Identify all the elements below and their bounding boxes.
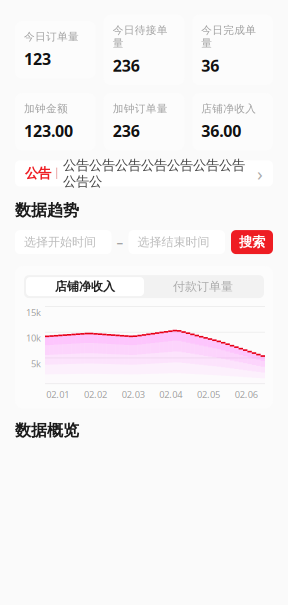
staticText: 36.00 (201, 120, 241, 141)
staticText: 123.00 (24, 120, 73, 141)
staticText: 店铺净收入 (201, 102, 256, 115)
staticText: 公告公告公告公告公告公告公告公告公 (63, 157, 245, 190)
staticText: 02.06 (235, 388, 258, 400)
button[interactable]: 加钟订单量 (104, 93, 184, 150)
staticText: 123 (24, 48, 51, 69)
staticText: 10k (26, 332, 41, 344)
staticText: 付款订单量 (173, 279, 233, 294)
staticText: 02.04 (159, 388, 182, 400)
staticText: 今日完成单量 (201, 24, 256, 50)
staticText: 加钟订单量 (113, 102, 168, 115)
staticText: 02.01 (46, 388, 69, 400)
button[interactable]: 选择结束时间 (128, 230, 225, 254)
staticText: 数据趋势 (15, 200, 79, 220)
staticText: 15k (26, 306, 41, 318)
staticText: – (116, 233, 123, 251)
button[interactable]: 今日完成单量 (192, 15, 273, 85)
staticText: 数据概览 (15, 420, 79, 440)
staticText: 丨 (51, 166, 63, 181)
staticText: 店铺净收入 (55, 279, 115, 294)
button[interactable]: 搜索 (231, 230, 273, 254)
staticText: 02.02 (84, 388, 107, 400)
staticText: 今日订单量 (24, 30, 79, 43)
staticText: 选择开始时间 (24, 235, 96, 249)
staticText: 5k (31, 357, 41, 370)
button[interactable]: 店铺净收入 (192, 93, 273, 150)
staticText: 搜索 (239, 234, 265, 250)
button[interactable]: 加钟金额 (15, 93, 96, 150)
button[interactable]: 付款订单量 (144, 277, 262, 296)
staticText: 公告 (25, 165, 51, 182)
button[interactable]: 选择开始时间 (15, 230, 111, 254)
button[interactable]: 店铺净收入 (26, 277, 144, 296)
staticText: 236 (113, 120, 140, 141)
staticText: 今日待接单量 (113, 24, 168, 50)
button[interactable]: 今日订单量 (15, 21, 96, 79)
staticText: › (257, 161, 263, 186)
button[interactable]: 公告 (15, 160, 273, 186)
staticText: 选择结束时间 (137, 235, 209, 249)
staticText: 加钟金额 (24, 102, 68, 115)
staticText: 236 (113, 55, 140, 76)
button[interactable]: 今日待接单量 (104, 15, 184, 85)
staticText: 36 (201, 55, 219, 76)
staticText: 02.05 (197, 388, 220, 400)
staticText: 02.03 (122, 388, 145, 400)
